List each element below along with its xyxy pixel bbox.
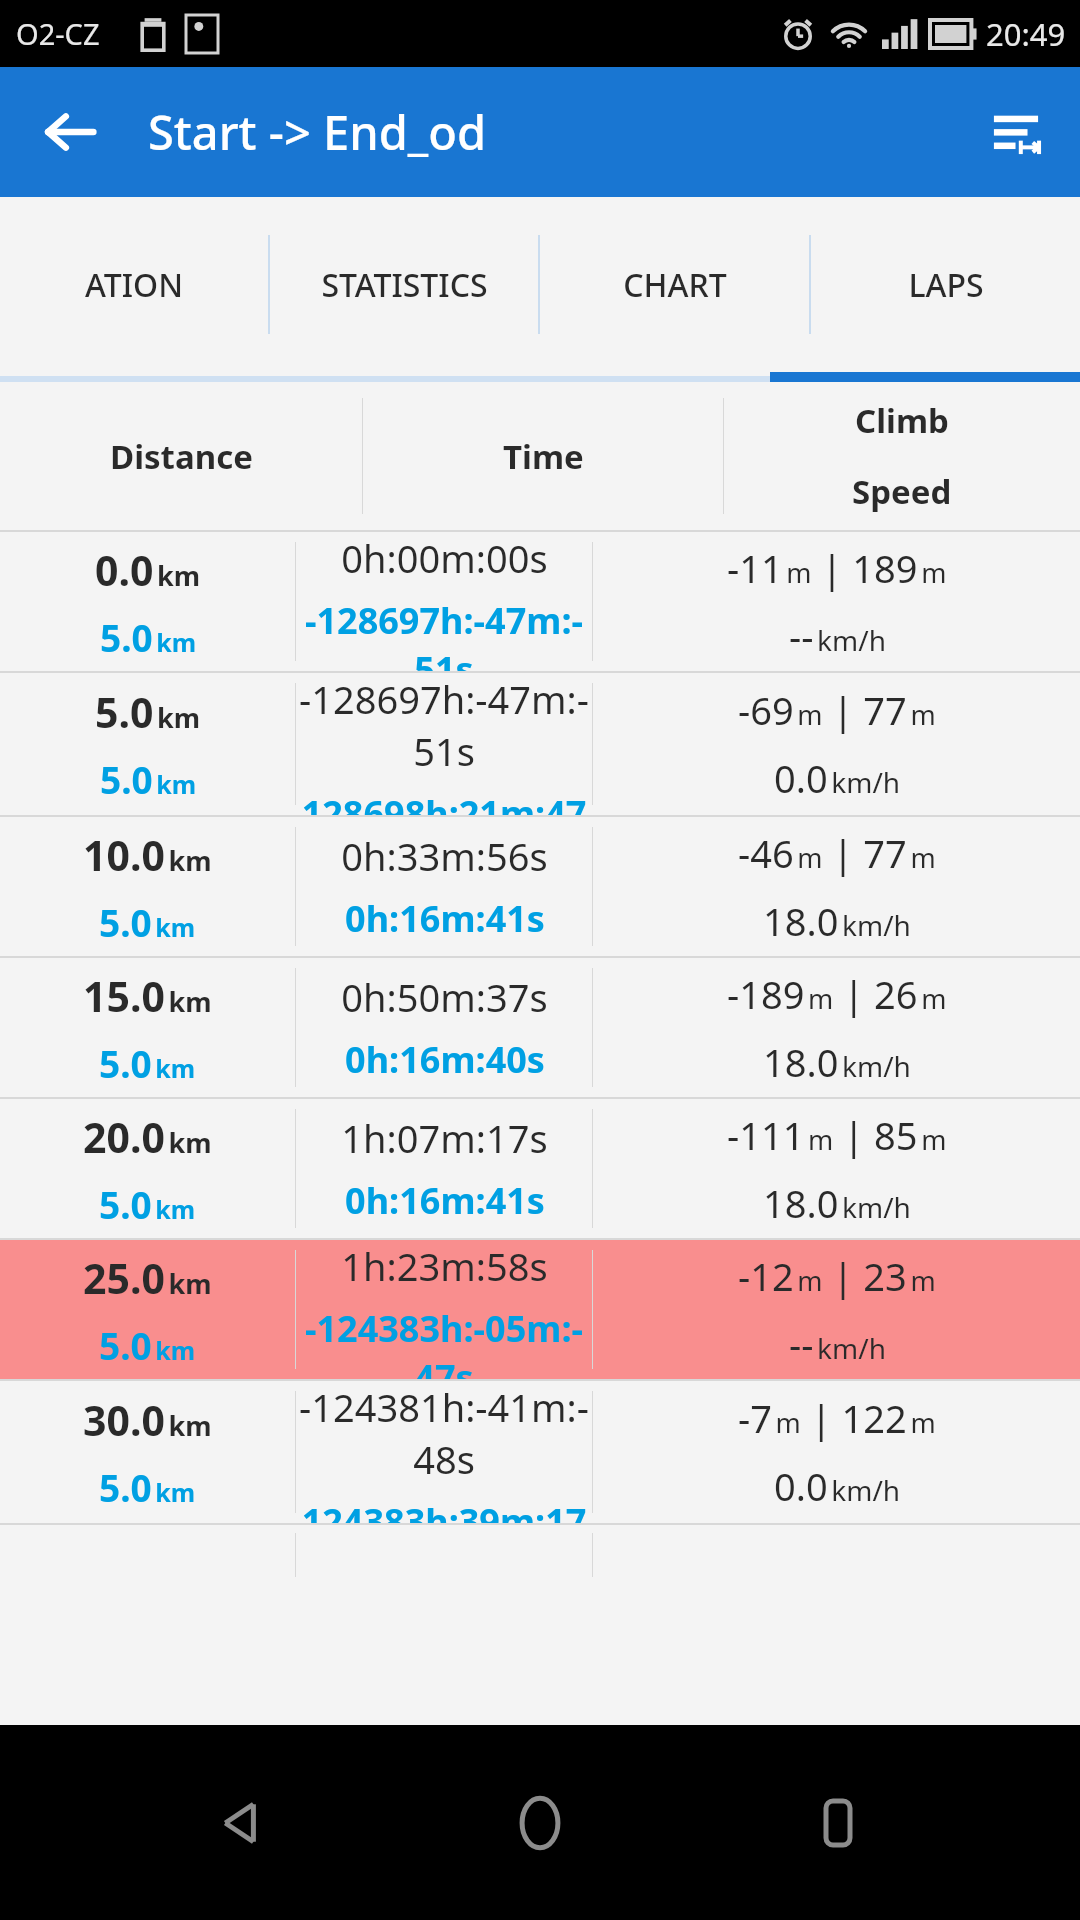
button[interactable]: 20.0 km (0, 1099, 1080, 1238)
staticText: 0.0 km/h (774, 1460, 901, 1512)
staticText: O2-CZ (16, 14, 100, 53)
button[interactable]: ATION (0, 197, 268, 372)
staticText: 0h:50m:37s (341, 971, 548, 1023)
staticText: 128698h:21m:47s (298, 789, 590, 815)
staticText: 20:49 (986, 13, 1066, 55)
button[interactable]: CHART (540, 197, 809, 372)
staticText: 18.0 km/h (763, 1177, 911, 1229)
staticText: -128697h:-47m:-51s (298, 673, 590, 777)
staticText: 15.0 km (83, 968, 212, 1024)
staticText: Speed (852, 469, 952, 514)
staticText: 5.0 km (100, 754, 197, 804)
staticText: -12 m | 23 m (738, 1250, 936, 1302)
staticText: 0.0 km (95, 542, 201, 598)
button[interactable]: STATISTICS (270, 197, 538, 372)
button[interactable]: 30.0 km (0, 1381, 1080, 1523)
staticText: 18.0 km/h (763, 895, 911, 947)
staticText: 30.0 km (83, 1392, 212, 1448)
button[interactable]: 0.0 km (0, 532, 1080, 671)
staticText: ATION (85, 263, 183, 307)
staticText: 0h:16m:40s (345, 1035, 545, 1084)
button[interactable]: Sort (976, 92, 1056, 172)
staticText: Climb (855, 398, 949, 443)
staticText: 0h:16m:41s (345, 1176, 545, 1225)
staticText: 5.0 km (99, 1179, 196, 1229)
staticText: LAPS (908, 263, 984, 307)
staticText: 5.0 km (95, 684, 201, 740)
button[interactable]: 15.0 km (0, 958, 1080, 1097)
staticText: 5.0 km (99, 1462, 196, 1512)
staticText: 0h:33m:56s (341, 830, 548, 882)
staticText: 10.0 km (83, 827, 212, 883)
button[interactable]: Home (485, 1768, 595, 1878)
button[interactable]: LAPS (811, 197, 1080, 372)
staticText: 5.0 km (100, 612, 197, 662)
button[interactable]: Back (188, 1768, 298, 1878)
staticText: -7 m | 122 m (738, 1392, 936, 1444)
staticText: CHART (623, 263, 727, 307)
staticText: 5.0 km (99, 1038, 196, 1088)
button[interactable]: 5.0 km (0, 673, 1080, 815)
staticText: 1h:07m:17s (341, 1112, 548, 1164)
staticText: 25.0 km (83, 1250, 212, 1306)
staticText: 0h:16m:41s (345, 894, 545, 943)
staticText: -69 m | 77 m (738, 684, 936, 736)
staticText: 1h:23m:58s (341, 1240, 548, 1292)
staticText: -128697h:-47m:-51s (298, 596, 590, 671)
staticText: 5.0 km (99, 897, 196, 947)
staticText: Time (503, 434, 584, 479)
staticText: -124383h:-05m:-47s (298, 1304, 590, 1379)
staticText: -46 m | 77 m (738, 827, 936, 879)
button[interactable]: Recent apps (783, 1768, 893, 1878)
staticText: -111 m | 85 m (727, 1109, 947, 1161)
staticText: Start -> End_od (148, 100, 487, 164)
staticText: -11 m | 189 m (727, 542, 947, 594)
staticText: -- km/h (789, 610, 886, 662)
staticText: 124383h:39m:17s (298, 1497, 590, 1523)
staticText: -189 m | 26 m (727, 968, 947, 1020)
button[interactable]: 10.0 km (0, 817, 1080, 956)
staticText: 5.0 km (99, 1320, 196, 1370)
staticText: -124381h:-41m:-48s (298, 1381, 590, 1485)
staticText: STATISTICS (321, 263, 488, 307)
staticText: 0h:00m:00s (341, 532, 548, 584)
staticText: -- km/h (789, 1318, 886, 1370)
staticText: 0.0 km/h (774, 752, 901, 804)
staticText: Distance (110, 434, 253, 479)
staticText: 20.0 km (83, 1109, 212, 1165)
button[interactable]: Back (32, 94, 108, 170)
button[interactable]: 25.0 km (0, 1240, 1080, 1379)
staticText: 18.0 km/h (763, 1036, 911, 1088)
